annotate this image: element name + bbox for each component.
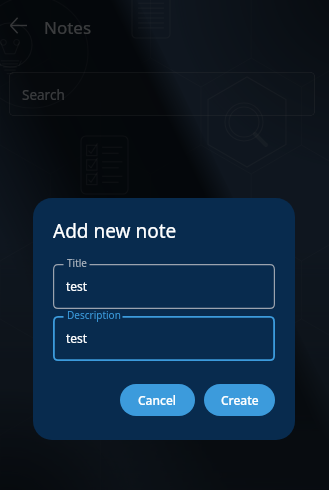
staticText: Notes	[44, 16, 92, 39]
staticText: Description	[67, 308, 121, 322]
staticText: Cancel	[138, 392, 177, 408]
staticText: Title	[67, 256, 87, 270]
button[interactable]: Description	[53, 316, 275, 361]
staticText: Add new note	[53, 218, 177, 244]
button[interactable]: Create	[204, 384, 275, 416]
staticText: test	[66, 330, 88, 346]
button[interactable]: Back	[4, 11, 33, 40]
staticText: test	[66, 278, 88, 294]
button[interactable]: Cancel	[120, 384, 195, 416]
staticText: Create	[221, 392, 259, 408]
button[interactable]: Title	[53, 264, 275, 309]
staticText: Search	[22, 86, 65, 104]
button[interactable]: Search	[9, 72, 315, 116]
